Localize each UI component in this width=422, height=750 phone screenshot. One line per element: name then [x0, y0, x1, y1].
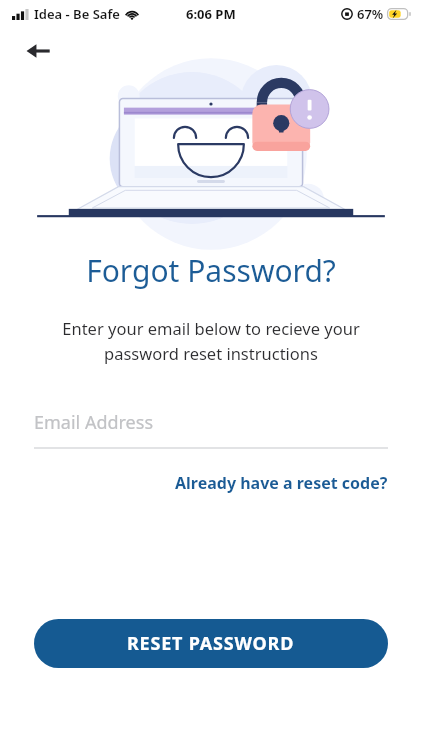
button[interactable]: Email Address	[34, 410, 388, 449]
staticText: 67%	[357, 5, 384, 23]
staticText: Enter your email below to recieve your p…	[34, 317, 388, 364]
staticText: RESET PASSWORD	[127, 631, 295, 656]
button[interactable]: RESET PASSWORD	[34, 619, 388, 668]
button[interactable]: Back	[16, 29, 60, 73]
staticText: Email Address	[34, 410, 154, 435]
staticText: Already have a reset code?	[175, 472, 388, 494]
button[interactable]: Already have a reset code?	[175, 469, 388, 497]
staticText: Idea - Be Safe	[34, 5, 120, 23]
staticText: Forgot Password?	[86, 250, 336, 291]
staticText: 6:06 PM	[186, 5, 236, 23]
